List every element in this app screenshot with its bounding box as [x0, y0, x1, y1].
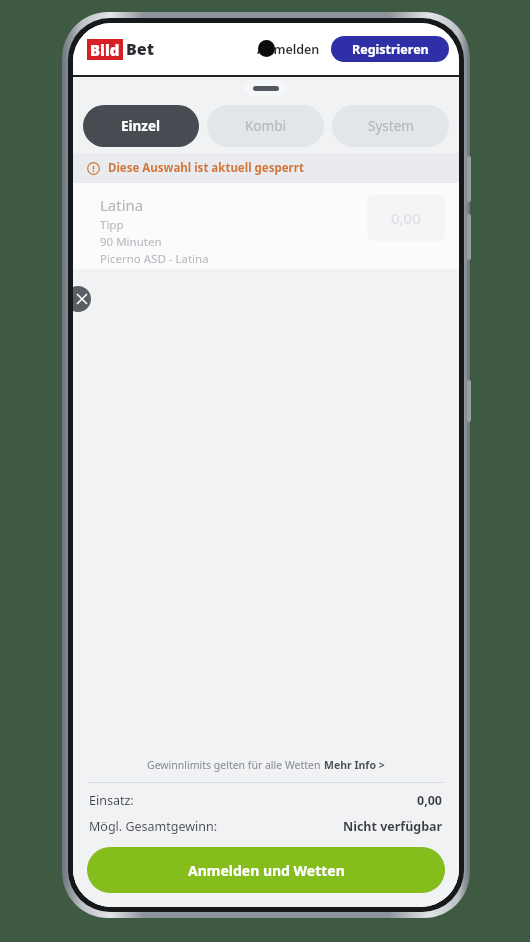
- button[interactable]: Gewinnlimits gelten für alle Wetten: [73, 748, 459, 782]
- button[interactable]: Einzel: [83, 105, 199, 147]
- staticText: Diese Auswahl ist aktuell gesperrt: [108, 160, 304, 176]
- staticText: Anmelden: [257, 41, 320, 58]
- staticText: Bet: [126, 38, 155, 60]
- staticText: 0,00: [417, 792, 443, 809]
- button[interactable]: 0,00: [367, 195, 445, 241]
- button[interactable]: Anmelden und Wetten: [87, 847, 445, 893]
- staticText: 90 Minuten: [100, 234, 162, 250]
- staticText: Mögl. Gesamtgewinn:: [89, 818, 218, 835]
- staticText: Tipp: [100, 217, 124, 233]
- staticText: System: [368, 117, 414, 135]
- staticText: Anmelden und Wetten: [188, 861, 345, 880]
- staticText: Einsatz:: [89, 792, 134, 809]
- staticText: Latina: [100, 195, 144, 215]
- button[interactable]: Anmelden: [253, 35, 324, 64]
- staticText: Nicht verfügbar: [343, 818, 443, 835]
- button[interactable]: Bild: [87, 38, 155, 60]
- button[interactable]: System: [332, 105, 449, 147]
- staticText: Gewinnlimits gelten für alle Wetten: [147, 758, 324, 772]
- staticText: Kombi: [245, 117, 286, 135]
- staticText: Bild: [90, 40, 120, 60]
- button[interactable]: Auswahl entfernen: [73, 286, 91, 312]
- staticText: Mehr Info >: [324, 758, 385, 772]
- staticText: 0,00: [391, 208, 421, 228]
- button[interactable]: Kombi: [207, 105, 324, 147]
- staticText: Picerno ASD - Latina: [100, 251, 209, 267]
- staticText: Einzel: [121, 117, 161, 135]
- button[interactable]: Registrieren: [331, 36, 449, 62]
- staticText: Registrieren: [352, 41, 429, 58]
